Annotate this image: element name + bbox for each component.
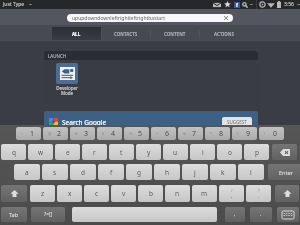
button[interactable]: @ <box>43 127 68 140</box>
button[interactable]: r <box>82 144 107 160</box>
staticText: ? <box>258 188 260 193</box>
button[interactable]: p <box>244 144 269 160</box>
button[interactable]: ) <box>259 127 284 140</box>
button[interactable]: CONTENT <box>150 27 199 40</box>
button[interactable]: $ <box>97 127 122 140</box>
button[interactable]: e <box>55 144 80 160</box>
staticText: ?=[] <box>44 211 53 218</box>
button[interactable]: y <box>136 144 161 160</box>
button[interactable]: g <box>126 164 152 180</box>
staticText: v <box>122 189 126 198</box>
staticText: Developer Mode <box>56 85 78 97</box>
button[interactable]: l <box>238 164 264 180</box>
button[interactable]: Shift <box>1 185 27 202</box>
staticText: j <box>194 168 196 177</box>
staticText: x <box>68 189 72 198</box>
button[interactable]: b <box>138 185 163 202</box>
staticText: y <box>147 148 151 157</box>
button[interactable]: a <box>14 164 40 180</box>
staticText: ^ <box>156 131 159 136</box>
staticText: f <box>110 168 113 177</box>
button[interactable]: o <box>217 144 242 160</box>
staticText: 9 <box>246 129 251 139</box>
button[interactable]: d <box>70 164 96 180</box>
button[interactable]: x <box>57 185 82 202</box>
staticText: ALL <box>72 31 81 37</box>
staticText: p <box>255 148 259 157</box>
staticText: i <box>202 148 204 157</box>
button[interactable]: ACTIONS <box>199 27 248 40</box>
button[interactable]: ~ <box>16 127 41 140</box>
button[interactable]: & <box>178 127 203 140</box>
staticText: 1 <box>30 129 35 139</box>
staticText: SUGGEST <box>227 119 247 125</box>
button[interactable]: ALL <box>52 27 101 40</box>
staticText: upupdowndownleftrightleftrightbastart <box>72 15 166 22</box>
button[interactable]: m <box>192 185 217 202</box>
staticText: Just Type <box>3 1 25 8</box>
button[interactable]: % <box>124 127 149 140</box>
staticText: g <box>137 168 141 177</box>
button[interactable]: Backspace <box>272 144 297 160</box>
button[interactable]: s <box>42 164 68 180</box>
button[interactable]: Shift <box>275 185 299 202</box>
staticText: n <box>175 189 180 198</box>
button[interactable]: Symbols <box>31 207 65 222</box>
staticText: e <box>66 148 70 157</box>
button[interactable]: / <box>219 185 244 202</box>
button[interactable]: Comma <box>225 207 245 222</box>
button[interactable]: SUGGEST <box>227 119 247 125</box>
staticText: Tab <box>9 211 19 218</box>
button[interactable]: ^ <box>151 127 176 140</box>
staticText: @ <box>48 131 52 136</box>
button[interactable]: n <box>165 185 190 202</box>
button[interactable]: ? <box>246 185 271 202</box>
button[interactable]: ( <box>232 127 257 140</box>
staticText: t <box>120 148 123 157</box>
staticText: f <box>236 2 238 8</box>
staticText: / <box>231 188 233 193</box>
button[interactable]: Hide keyboard <box>277 207 299 222</box>
staticText: ) <box>264 131 266 136</box>
button[interactable]: CONTACTS <box>101 27 150 40</box>
button[interactable]: Period <box>250 207 272 222</box>
staticText: k <box>221 168 225 177</box>
staticText: * <box>210 131 213 136</box>
button[interactable]: c <box>84 185 109 202</box>
staticText: $ <box>102 131 105 136</box>
staticText: 3 <box>84 129 89 139</box>
button[interactable]: t <box>109 144 134 160</box>
staticText: b <box>149 189 153 198</box>
button[interactable]: u <box>163 144 188 160</box>
staticText: 8 <box>219 129 224 139</box>
button[interactable]: h <box>154 164 180 180</box>
button[interactable]: Enter <box>268 164 300 180</box>
staticText: CONTENT <box>164 31 186 37</box>
staticText: l <box>250 168 252 177</box>
staticText: 0 <box>273 129 278 139</box>
button[interactable]: f <box>98 164 124 180</box>
button[interactable]: Developer Mode <box>54 63 80 97</box>
staticText: ACTIONS <box>214 31 234 37</box>
button[interactable]: Tab <box>1 207 27 222</box>
button[interactable]: q <box>1 144 26 160</box>
button[interactable]: j <box>182 164 208 180</box>
button[interactable]: # <box>70 127 95 140</box>
button[interactable]: Just Type <box>3 0 33 9</box>
staticText: 6 <box>165 129 170 139</box>
staticText: a <box>25 168 29 177</box>
staticText: q <box>12 148 16 157</box>
staticText: m <box>201 189 208 198</box>
button[interactable]: v <box>111 185 136 202</box>
button[interactable]: upupdowndownleftrightleftrightbastart <box>67 14 233 22</box>
button[interactable]: Search Google <box>44 111 258 133</box>
button[interactable]: i <box>190 144 215 160</box>
button[interactable] <box>72 207 217 222</box>
button[interactable]: k <box>210 164 236 180</box>
staticText: 4 <box>111 129 116 139</box>
staticText: o <box>228 148 232 157</box>
button[interactable]: w <box>28 144 53 160</box>
button[interactable]: z <box>30 185 55 202</box>
staticText: w <box>38 148 44 157</box>
button[interactable]: * <box>205 127 230 140</box>
